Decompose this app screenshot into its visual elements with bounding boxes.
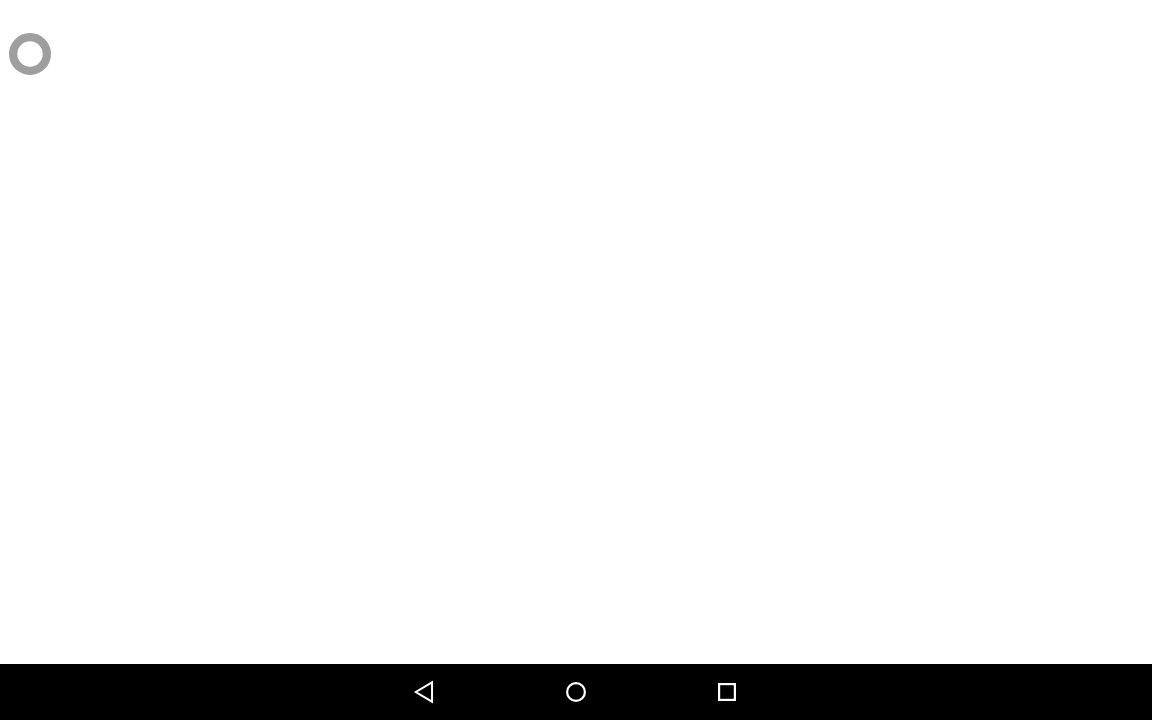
other: Loading	[9, 33, 51, 75]
button[interactable]: Recent apps	[699, 664, 755, 720]
button[interactable]: Back	[397, 664, 453, 720]
button[interactable]: Home	[548, 664, 604, 720]
